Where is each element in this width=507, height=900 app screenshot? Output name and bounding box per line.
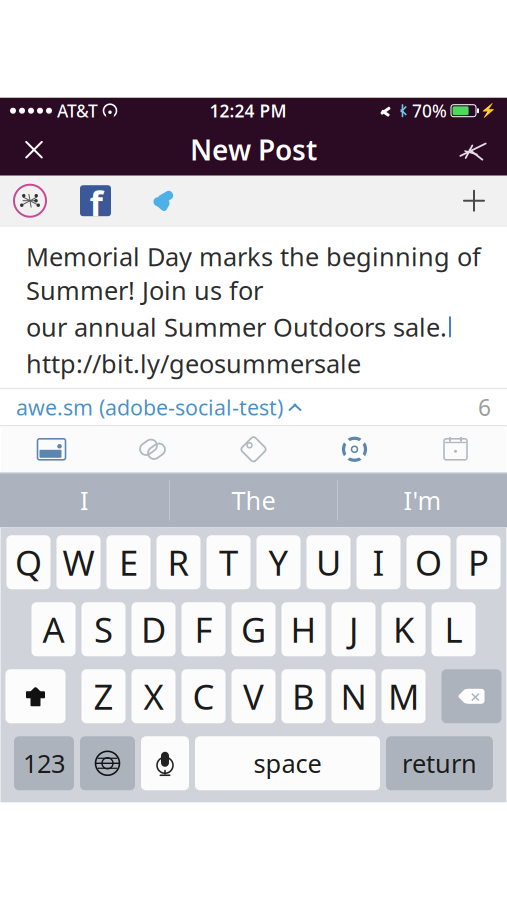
- button[interactable]: D: [131, 602, 175, 656]
- button[interactable]: return: [386, 736, 493, 790]
- staticText: O: [415, 539, 442, 585]
- button[interactable]: J: [331, 602, 375, 656]
- button[interactable]: R: [156, 535, 200, 589]
- button[interactable]: W: [56, 535, 100, 589]
- button[interactable]: Delete: [441, 669, 501, 723]
- button[interactable]: X: [131, 669, 175, 723]
- staticText: M: [388, 673, 419, 719]
- staticText: 6: [478, 392, 491, 422]
- staticText: V: [243, 673, 264, 719]
- button[interactable]: G: [231, 602, 275, 656]
- button[interactable]: F: [181, 602, 225, 656]
- button[interactable]: The: [170, 473, 337, 527]
- staticText: C: [192, 673, 214, 719]
- button[interactable]: awe.sm (adobe-social-test): [16, 385, 303, 429]
- button[interactable]: I'm: [338, 473, 507, 527]
- button[interactable]: O: [406, 535, 450, 589]
- button[interactable]: H: [281, 602, 325, 656]
- staticText: The: [231, 483, 275, 517]
- staticText: http://bit.ly/geosummersale: [26, 347, 361, 380]
- button[interactable]: I: [356, 535, 400, 589]
- staticText: H: [290, 606, 316, 652]
- button[interactable]: Y: [256, 535, 300, 589]
- staticText: T: [219, 539, 238, 585]
- staticText: R: [167, 539, 189, 585]
- button[interactable]: V: [231, 669, 275, 723]
- button[interactable]: Add tag: [203, 426, 304, 472]
- staticText: Q: [15, 539, 42, 585]
- staticText: D: [141, 606, 166, 652]
- staticText: I'm: [403, 483, 441, 517]
- staticText: 12:24 PM: [209, 99, 286, 122]
- staticText: G: [241, 606, 266, 652]
- staticText: Memorial Day marks the beginning of Summ…: [26, 240, 481, 307]
- staticText: B: [292, 673, 315, 719]
- button[interactable]: Z: [81, 669, 125, 723]
- staticText: I: [372, 539, 384, 585]
- button[interactable]: B: [281, 669, 325, 723]
- staticText: L: [444, 606, 462, 652]
- staticText: S: [94, 606, 113, 652]
- button[interactable]: N: [331, 669, 375, 723]
- button[interactable]: E: [106, 535, 150, 589]
- staticText: 123: [23, 746, 65, 780]
- button[interactable]: Close: [6, 124, 62, 176]
- button[interactable]: Dictation: [141, 736, 189, 790]
- button[interactable]: Add link: [102, 426, 203, 472]
- button[interactable]: space: [195, 736, 380, 790]
- staticText: Y: [268, 539, 288, 585]
- staticText: New Post: [190, 131, 317, 168]
- button[interactable]: S: [81, 602, 125, 656]
- button[interactable]: Shift: [5, 669, 65, 723]
- staticText: F: [194, 606, 212, 652]
- staticText: A: [42, 606, 64, 652]
- staticText: ×: [470, 684, 481, 709]
- button[interactable]: Facebook: [70, 176, 121, 226]
- button[interactable]: Add account: [449, 176, 499, 226]
- button[interactable]: Add photo: [1, 426, 102, 472]
- button[interactable]: Twitter: [139, 176, 189, 226]
- staticText: our annual Summer Outdoors sale.: [26, 310, 447, 344]
- button[interactable]: Targeting: [304, 426, 405, 472]
- staticText: AT&T: [57, 99, 98, 122]
- staticText: N: [340, 673, 366, 719]
- button[interactable]: M: [381, 669, 425, 723]
- staticText: U: [316, 539, 341, 585]
- staticText: space: [253, 746, 321, 780]
- button[interactable]: Q: [6, 535, 50, 589]
- staticText: E: [119, 539, 138, 585]
- staticText: K: [393, 606, 414, 652]
- button[interactable]: K: [381, 602, 425, 656]
- staticText: X: [143, 673, 163, 719]
- button[interactable]: L: [431, 602, 475, 656]
- button[interactable]: Schedule: [405, 426, 506, 472]
- staticText: J: [349, 606, 358, 652]
- staticText: Z: [93, 673, 113, 719]
- button[interactable]: I: [0, 473, 169, 527]
- staticText: awe.sm (adobe-social-test): [16, 393, 283, 421]
- staticText: I: [80, 483, 89, 517]
- button[interactable]: U: [306, 535, 350, 589]
- button[interactable]: A: [31, 602, 75, 656]
- button[interactable]: C: [181, 669, 225, 723]
- button[interactable]: T: [206, 535, 250, 589]
- staticText: f: [89, 180, 102, 226]
- button[interactable]: Account: [12, 183, 48, 219]
- button[interactable]: Next keyboard: [80, 736, 135, 790]
- staticText: W: [62, 539, 94, 585]
- button[interactable]: P: [456, 535, 500, 589]
- staticText: P: [468, 539, 489, 585]
- button[interactable]: Send: [445, 124, 501, 176]
- button[interactable]: 123: [14, 736, 74, 790]
- staticText: 70%: [412, 99, 447, 122]
- staticText: return: [402, 746, 477, 780]
- staticText: ⚡: [480, 103, 497, 118]
